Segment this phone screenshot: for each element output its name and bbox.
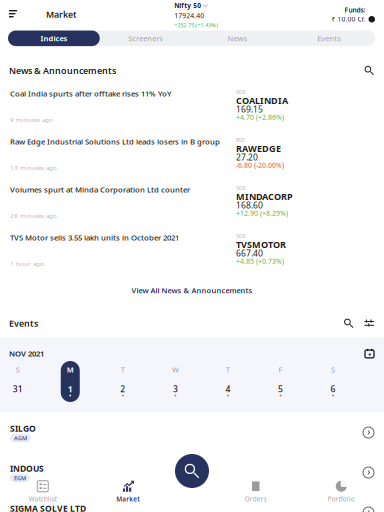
button[interactable]: Screeners xyxy=(100,30,192,46)
staticText: MINDACORP xyxy=(236,190,293,202)
staticText: 4 xyxy=(225,383,230,395)
staticText: W xyxy=(172,365,179,374)
staticText: F xyxy=(278,365,282,374)
staticText: News & Announcements xyxy=(9,65,116,76)
staticText: 31 xyxy=(13,383,23,395)
staticText: 667.40 xyxy=(236,247,263,259)
staticText: S xyxy=(331,365,335,374)
button[interactable]: Indices xyxy=(8,30,100,46)
staticText: NSE xyxy=(236,184,246,192)
staticText: 17924.40 xyxy=(174,11,204,20)
button[interactable]: Search events xyxy=(344,319,353,328)
button[interactable]: Market xyxy=(85,476,171,508)
button[interactable]: Coal India spurts after offtake rises 11… xyxy=(0,85,384,133)
staticText: M xyxy=(67,365,74,374)
button[interactable]: Events xyxy=(283,30,375,46)
button[interactable]: SILGO xyxy=(0,412,384,452)
staticText: TVS Motor sells 3.55 lakh units in Octob… xyxy=(10,232,179,243)
staticText: 5 xyxy=(278,383,283,395)
button[interactable]: Search news xyxy=(364,66,374,75)
staticText: ₹ 10.00 Cr. xyxy=(331,15,365,23)
staticText: +4.70 (+2.86%) xyxy=(236,112,284,122)
button[interactable]: T xyxy=(202,361,254,402)
staticText: Watchlist xyxy=(29,495,57,503)
staticText: View All News & Announcements xyxy=(131,285,252,295)
staticText: Events xyxy=(317,33,341,43)
button[interactable]: T xyxy=(96,361,149,402)
button[interactable]: Orders xyxy=(213,476,298,508)
staticText: 169.15 xyxy=(236,103,263,115)
button[interactable]: S xyxy=(0,361,44,402)
staticText: 168.60 xyxy=(236,199,263,211)
staticText: Events xyxy=(9,317,38,329)
staticText: T xyxy=(121,365,125,374)
staticText: NOV 2021 xyxy=(9,348,44,358)
staticText: Indices xyxy=(40,33,67,43)
staticText: INDOUS xyxy=(10,463,44,474)
staticText: BSE xyxy=(236,136,245,144)
staticText: 2 xyxy=(120,383,125,395)
staticText: 3 xyxy=(173,383,178,395)
staticText: 1 hour ago xyxy=(10,259,44,268)
staticText: S xyxy=(16,365,20,374)
staticText: Volumes spurt at Minda Corporation Ltd c… xyxy=(10,184,190,195)
button[interactable]: Menu xyxy=(0,0,25,25)
button[interactable]: News xyxy=(191,30,283,46)
button[interactable]: View All News & Announcements xyxy=(0,277,384,303)
staticText: +12.90 (+8.29%) xyxy=(236,208,288,218)
staticText: +252.75 (+1.43%) xyxy=(174,21,218,29)
staticText: +4.85 (+0.73%) xyxy=(236,256,284,266)
staticText: Portfolio xyxy=(328,495,355,503)
staticText: Raw Edge Industrial Solutions Ltd leads … xyxy=(10,136,220,147)
staticText: SILGO xyxy=(10,423,36,434)
button[interactable]: F xyxy=(254,361,307,402)
staticText: Screeners xyxy=(128,33,163,43)
button[interactable]: SIGMA SOLVE LTD xyxy=(0,492,384,512)
button[interactable]: S xyxy=(307,361,359,402)
staticText: EGM xyxy=(14,474,26,482)
button[interactable]: INDOUS xyxy=(0,452,384,492)
staticText: News xyxy=(227,33,247,43)
button[interactable]: Volumes spurt at Minda Corporation Ltd c… xyxy=(0,181,384,229)
staticText: Market xyxy=(46,8,77,20)
button[interactable]: Pick date xyxy=(365,349,374,358)
button[interactable]: Nifty 50 xyxy=(174,0,234,27)
staticText: Market xyxy=(116,495,140,503)
button[interactable]: Portfolio xyxy=(298,476,384,508)
staticText: 27.20 xyxy=(236,151,258,163)
staticText: Funds: xyxy=(344,6,365,14)
button[interactable]: Raw Edge Industrial Solutions Ltd leads … xyxy=(0,133,384,181)
button[interactable]: Filter xyxy=(353,319,374,328)
button[interactable]: W xyxy=(149,361,202,402)
button[interactable]: Search xyxy=(175,454,209,488)
staticText: 28 minutes ago xyxy=(10,211,57,220)
staticText: Nifty 50 xyxy=(174,1,201,10)
staticText: Orders xyxy=(245,495,267,503)
staticText: 6 xyxy=(331,383,336,395)
staticText: COALINDIA xyxy=(236,94,288,106)
staticText: Coal India spurts after offtake rises 11… xyxy=(10,88,172,99)
staticText: RAWEDGE xyxy=(236,142,281,154)
button[interactable]: M xyxy=(44,361,97,402)
staticText: 9 minutes ago xyxy=(10,115,53,124)
button[interactable]: TVS Motor sells 3.55 lakh units in Octob… xyxy=(0,229,384,277)
button[interactable]: Watchlist xyxy=(0,476,85,508)
staticText: 1 xyxy=(68,383,73,395)
staticText: NSE xyxy=(236,88,246,96)
staticText: TVSMOTOR xyxy=(236,238,286,250)
staticText: 13 minutes ago xyxy=(10,163,57,172)
staticText: NSE xyxy=(236,232,246,240)
staticText: -6.80 (-20.00%) xyxy=(236,160,284,170)
staticText: SIGMA SOLVE LTD xyxy=(10,503,86,512)
staticText: T xyxy=(226,365,230,374)
button[interactable]: Funds: xyxy=(331,0,384,22)
staticText: AGM xyxy=(14,434,27,442)
